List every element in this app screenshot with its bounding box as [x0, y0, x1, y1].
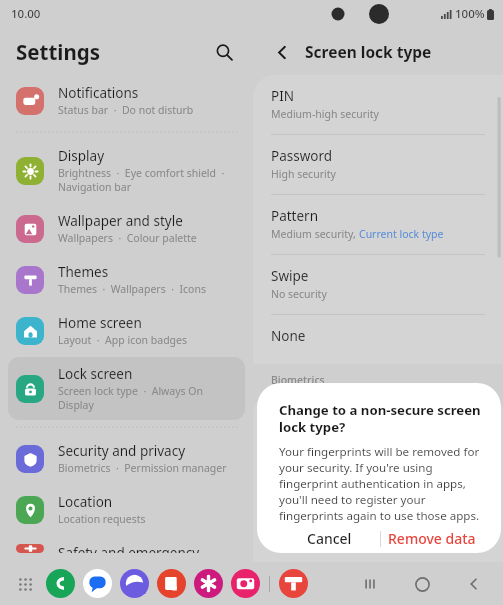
staticText: Themes · Wallpapers · Icons — [58, 282, 206, 296]
staticText: Medium security, — [271, 227, 359, 241]
staticText: Screen lock type — [305, 41, 432, 62]
staticText: High security — [271, 167, 336, 181]
staticText: Current lock type — [359, 227, 444, 241]
staticText: Medium-high security — [271, 107, 379, 121]
button[interactable]: Remove data — [381, 524, 483, 553]
staticText: Biometrics · Permission manager — [58, 461, 227, 475]
button[interactable]: Display — [8, 139, 245, 202]
button[interactable]: Home screen — [8, 306, 245, 355]
button[interactable]: internet — [119, 568, 150, 599]
button[interactable]: PIN — [253, 75, 503, 134]
button[interactable]: Safety and emergency — [8, 536, 245, 561]
staticText: Biometrics — [271, 373, 325, 387]
staticText: No security — [271, 287, 327, 301]
staticText: Location — [58, 493, 113, 511]
button[interactable]: None — [253, 315, 503, 358]
staticText: Screen lock type · Always On Display — [58, 384, 237, 412]
staticText: Home screen — [58, 314, 142, 332]
button[interactable]: camera — [230, 568, 261, 599]
staticText: Password — [271, 147, 333, 165]
staticText: Settings — [16, 38, 101, 66]
staticText: Safety and emergency — [58, 544, 200, 553]
staticText: Cancel — [307, 529, 352, 548]
button[interactable]: Lock screen — [8, 357, 245, 420]
staticText: Lock screen — [58, 365, 133, 383]
button[interactable]: themes — [278, 568, 309, 599]
staticText: Face — [271, 406, 300, 424]
button[interactable]: Back — [457, 567, 491, 601]
staticText: Layout · App icon badges — [58, 333, 188, 347]
button[interactable]: Back — [267, 37, 297, 67]
staticText: None — [271, 327, 306, 345]
staticText: Change to a non-secure screen lock type? — [279, 401, 483, 436]
staticText: Notifications — [58, 84, 139, 102]
button[interactable]: Pattern — [253, 195, 503, 254]
staticText: 100% — [455, 6, 485, 22]
button[interactable]: Swipe — [253, 255, 503, 314]
button[interactable]: messages — [82, 568, 113, 599]
button[interactable]: Notifications — [8, 76, 245, 125]
button[interactable]: Face — [253, 394, 503, 438]
staticText: Location requests — [58, 512, 146, 526]
button[interactable]: Cancel — [279, 524, 380, 553]
button[interactable]: Search — [209, 37, 239, 67]
staticText: PIN — [271, 87, 295, 105]
button[interactable]: Wallpaper and style — [8, 204, 245, 253]
button[interactable]: store — [156, 568, 187, 599]
staticText: 10.00 — [11, 6, 41, 22]
staticText: Wallpapers · Colour palette — [58, 231, 197, 245]
staticText: Wallpaper and style — [58, 212, 183, 230]
button[interactable]: Recents — [353, 567, 387, 601]
button[interactable]: phone — [45, 568, 76, 599]
button[interactable]: Security and privacy — [8, 434, 245, 483]
button[interactable]: gallery — [193, 568, 224, 599]
staticText: Your fingerprints will be removed for yo… — [279, 444, 483, 524]
button[interactable]: Themes — [8, 255, 245, 304]
staticText: Brightness · Eye comfort shield · — [58, 166, 225, 180]
staticText: Themes — [58, 263, 109, 281]
staticText: Remove data — [388, 529, 476, 548]
staticText: Security and privacy — [58, 442, 186, 460]
button[interactable]: Password — [253, 135, 503, 194]
button[interactable]: Apps — [8, 567, 42, 601]
button[interactable]: Home — [405, 567, 439, 601]
staticText: Swipe — [271, 267, 309, 285]
staticText: Display — [58, 147, 105, 165]
button[interactable]: Location — [8, 485, 245, 534]
staticText: Navigation bar — [58, 180, 132, 194]
staticText: Status bar · Do not disturb — [58, 103, 194, 117]
staticText: Pattern — [271, 207, 319, 225]
